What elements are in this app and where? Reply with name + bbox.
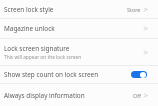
staticText: Lock screen signature xyxy=(4,44,70,53)
staticText: This will appear on the lock screen xyxy=(4,54,82,61)
staticText: Always display information xyxy=(4,91,85,100)
staticText: Show step count on lock screen xyxy=(4,70,99,79)
button[interactable]: Show step count on lock screen xyxy=(0,66,158,83)
button[interactable]: Always display information xyxy=(0,84,158,106)
staticText: Store xyxy=(127,6,141,13)
button[interactable]: Lock screen signature xyxy=(0,39,158,65)
button[interactable]: Show step count on lock screen toggle xyxy=(131,71,147,78)
staticText: Off xyxy=(133,92,141,99)
staticText: Screen lock style xyxy=(4,5,54,14)
button[interactable]: Screen lock style xyxy=(0,0,158,18)
button[interactable]: Magazine unlock xyxy=(0,19,158,38)
staticText: Magazine unlock xyxy=(4,24,55,33)
